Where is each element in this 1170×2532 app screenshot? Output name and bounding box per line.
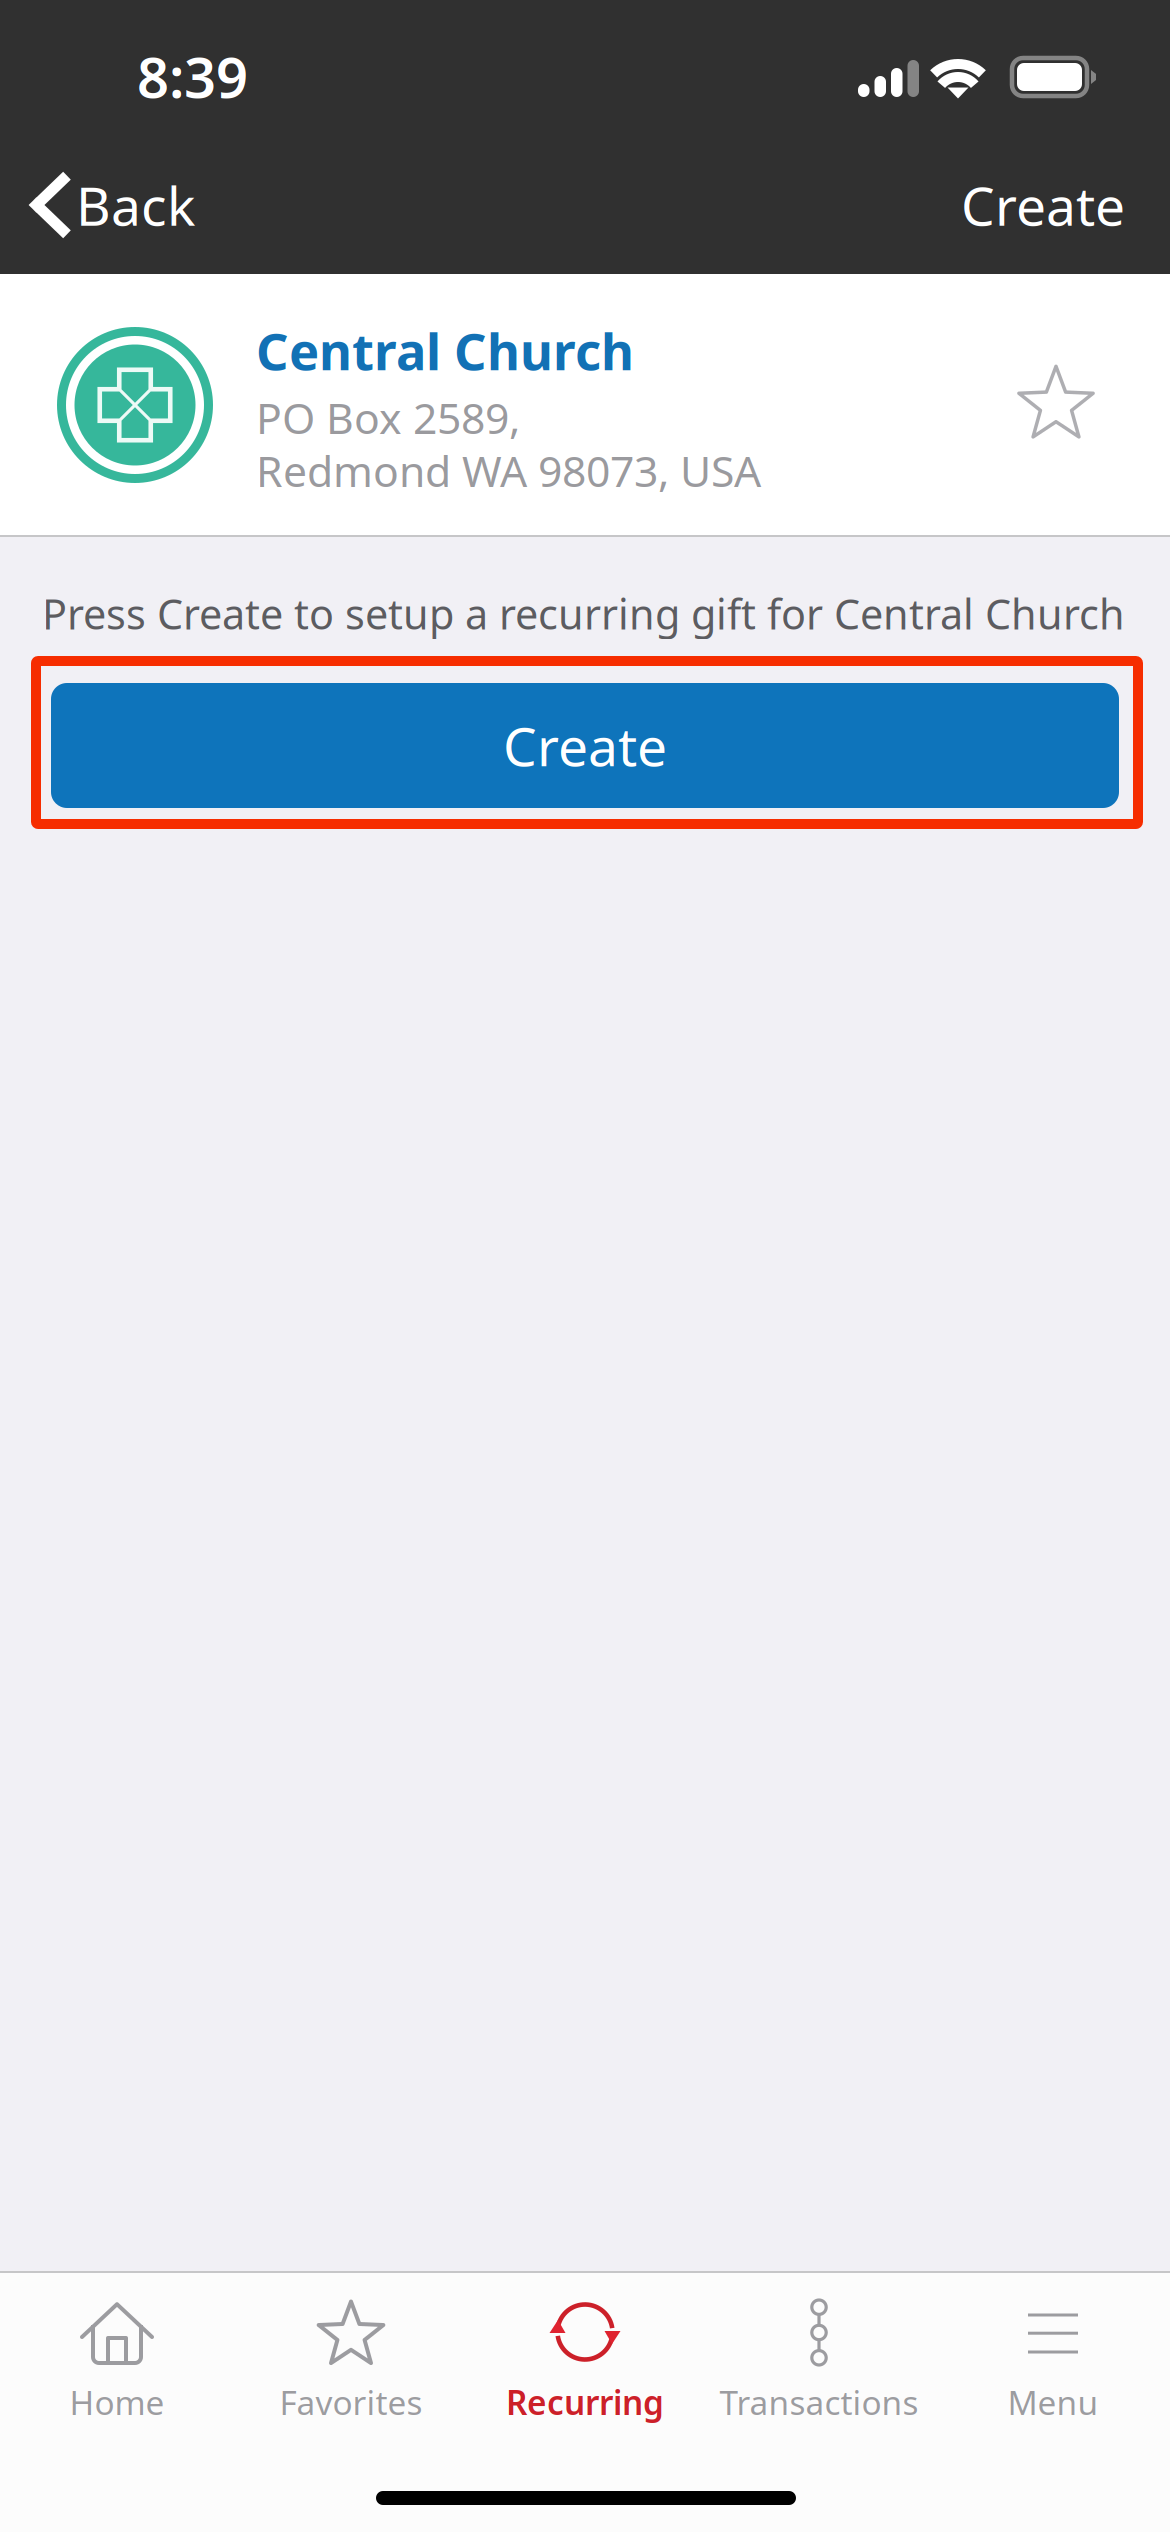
staticText: Home	[69, 2380, 164, 2424]
button[interactable]: Central Church	[0, 274, 1170, 535]
button[interactable]: Back	[0, 150, 221, 260]
button[interactable]: Menu	[936, 2273, 1170, 2443]
button[interactable]: Create	[933, 150, 1153, 260]
staticText: Back	[76, 170, 195, 240]
staticText: Recurring	[506, 2380, 664, 2424]
button[interactable]: Recurring	[468, 2273, 702, 2443]
button[interactable]: Create	[51, 683, 1119, 808]
staticText: Redmond WA 98073, USA	[256, 442, 761, 499]
staticText: 8:39	[137, 39, 248, 113]
button[interactable]: Transactions	[702, 2273, 936, 2443]
staticText: Favorites	[279, 2380, 422, 2424]
staticText: Transactions	[719, 2380, 918, 2424]
button[interactable]: Home	[0, 2273, 234, 2443]
staticText: PO Box 2589,	[256, 389, 520, 446]
staticText: Central Church	[256, 317, 634, 384]
staticText: Create	[961, 170, 1125, 240]
staticText: Press Create to setup a recurring gift f…	[42, 586, 1125, 641]
button[interactable]: Favorites	[234, 2273, 468, 2443]
staticText: Create	[503, 710, 667, 781]
staticText: Menu	[1007, 2380, 1098, 2424]
